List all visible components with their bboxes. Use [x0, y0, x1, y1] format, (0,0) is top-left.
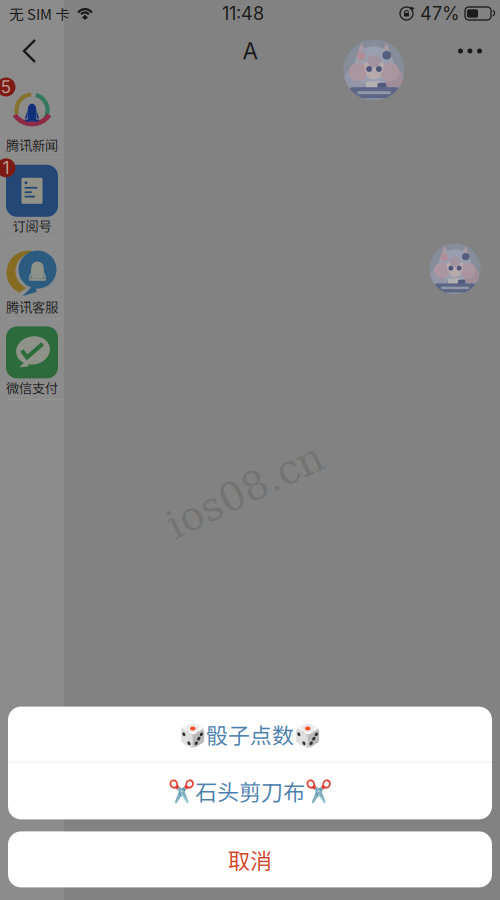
button[interactable]: 微信支付 — [0, 319, 64, 399]
button[interactable]: 取消 — [8, 831, 492, 887]
staticText: 腾讯客服 — [6, 297, 58, 316]
button[interactable]: 腾讯新闻 — [0, 77, 64, 157]
staticText: A — [242, 37, 257, 65]
button[interactable]: More — [448, 29, 492, 73]
staticText: 取消 — [228, 843, 272, 875]
staticText: 无 SIM 卡 — [9, 3, 70, 24]
button[interactable]: 腾讯客服 — [0, 239, 64, 319]
button[interactable]: ✂️石头剪刀布✂️ — [8, 762, 492, 819]
staticText: ios08.cn — [160, 468, 329, 514]
staticText: 11:48 — [222, 3, 264, 24]
staticText: 1 — [2, 157, 9, 178]
button[interactable]: Back — [8, 29, 52, 73]
staticText: ✂️石头剪刀布✂️ — [168, 775, 332, 807]
button[interactable]: 🎲骰子点数🎲 — [8, 707, 492, 762]
staticText: 47% — [420, 3, 460, 24]
staticText: 🎲骰子点数🎲 — [179, 718, 321, 750]
staticText: 5 — [0, 76, 11, 97]
staticText: 微信支付 — [6, 378, 58, 397]
button[interactable]: 订阅号 — [0, 158, 64, 238]
staticText: 订阅号 — [12, 216, 51, 235]
staticText: 腾讯新闻 — [6, 135, 58, 155]
